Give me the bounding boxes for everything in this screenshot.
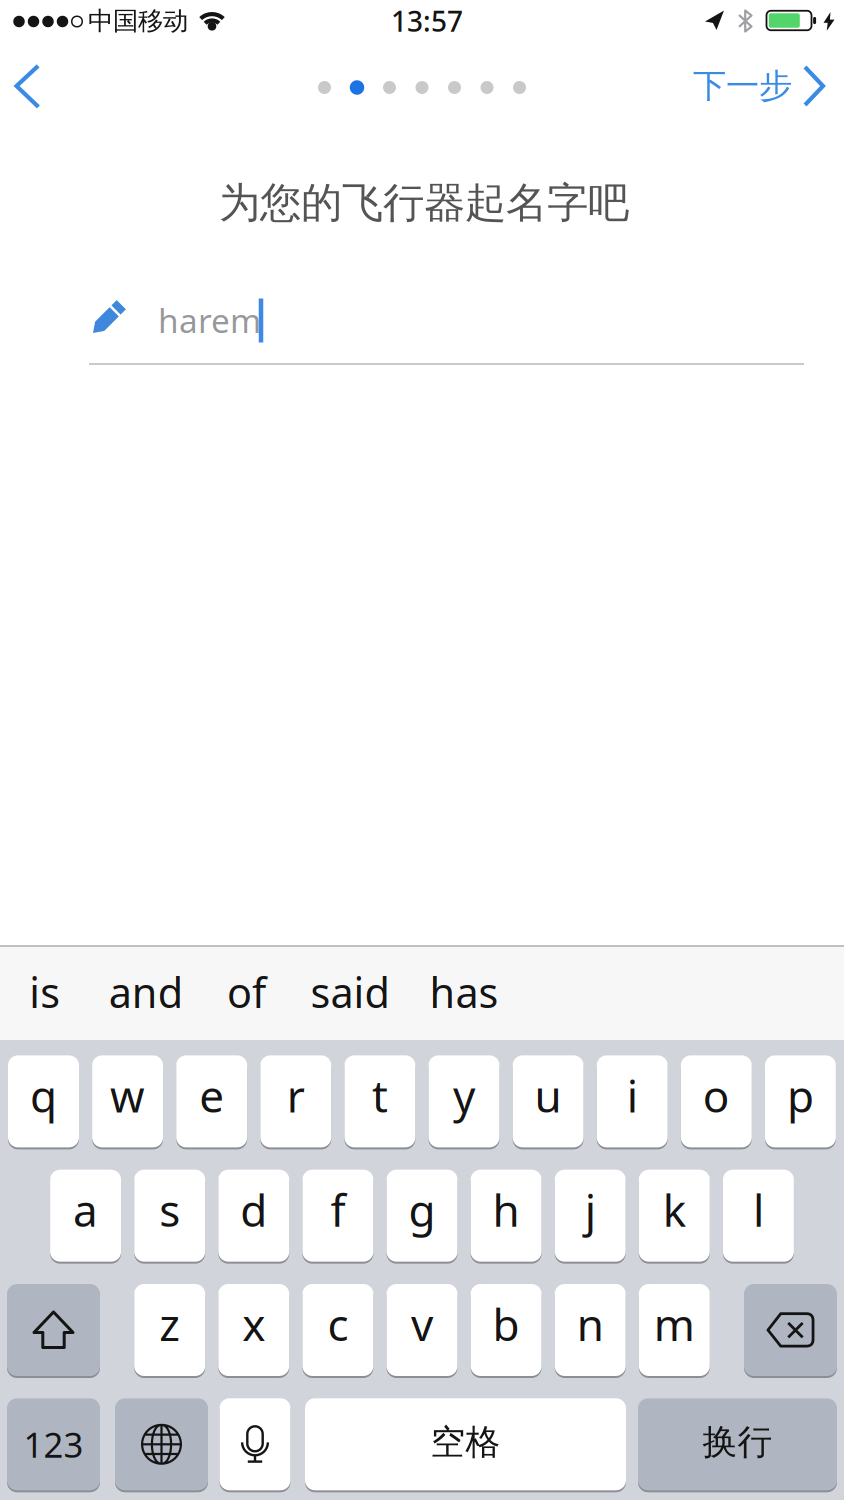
button[interactable]: j bbox=[555, 1170, 626, 1262]
button[interactable]: 换行 bbox=[638, 1398, 837, 1490]
staticText: 下一步 bbox=[693, 65, 792, 106]
button[interactable]: p bbox=[765, 1055, 836, 1147]
staticText: i bbox=[627, 1066, 638, 1125]
button[interactable]: has bbox=[429, 965, 498, 1019]
staticText: s bbox=[159, 1180, 180, 1239]
staticText: c bbox=[327, 1295, 348, 1353]
button[interactable]: of bbox=[227, 965, 266, 1019]
button[interactable]: r bbox=[260, 1055, 331, 1147]
staticText: b bbox=[493, 1295, 520, 1353]
button[interactable]: 下一步 bbox=[693, 65, 825, 106]
staticText: m bbox=[654, 1295, 695, 1353]
button[interactable]: l bbox=[723, 1170, 794, 1262]
button[interactable]: a bbox=[50, 1170, 121, 1262]
staticText: n bbox=[577, 1295, 604, 1353]
staticText: k bbox=[663, 1180, 686, 1239]
button[interactable]: s bbox=[134, 1170, 205, 1262]
button[interactable]: b bbox=[471, 1284, 542, 1376]
button[interactable]: said bbox=[310, 965, 389, 1019]
button[interactable]: h bbox=[471, 1170, 542, 1262]
button[interactable]: w bbox=[92, 1055, 163, 1147]
staticText: w bbox=[110, 1066, 145, 1125]
staticText: 为您的飞行器起名字吧 bbox=[219, 178, 629, 228]
button[interactable]: Delete bbox=[744, 1284, 837, 1376]
button[interactable]: c bbox=[302, 1284, 373, 1376]
button[interactable]: f bbox=[302, 1170, 373, 1262]
staticText: h bbox=[493, 1180, 520, 1239]
staticText: harem bbox=[158, 298, 261, 342]
staticText: is bbox=[29, 965, 60, 1019]
staticText: x bbox=[242, 1295, 265, 1353]
staticText: and bbox=[109, 965, 183, 1019]
staticText: 13:57 bbox=[391, 2, 463, 40]
staticText: j bbox=[585, 1180, 596, 1239]
button[interactable]: Back bbox=[15, 64, 40, 108]
button[interactable]: d bbox=[218, 1170, 289, 1262]
button[interactable]: x bbox=[218, 1284, 289, 1376]
staticText: g bbox=[408, 1180, 435, 1239]
staticText: r bbox=[287, 1066, 305, 1125]
button[interactable]: Shift bbox=[7, 1284, 100, 1376]
button[interactable]: k bbox=[639, 1170, 710, 1262]
button[interactable]: e bbox=[176, 1055, 247, 1147]
staticText: t bbox=[372, 1066, 388, 1125]
staticText: a bbox=[73, 1180, 98, 1239]
staticText: 空格 bbox=[430, 1421, 500, 1464]
staticText: said bbox=[310, 965, 389, 1019]
button[interactable]: Dictate bbox=[219, 1398, 290, 1490]
staticText: q bbox=[30, 1066, 57, 1125]
staticText: of bbox=[227, 965, 266, 1019]
button[interactable]: 空格 bbox=[305, 1398, 626, 1490]
button[interactable]: v bbox=[386, 1284, 457, 1376]
button[interactable]: q bbox=[8, 1055, 79, 1147]
button[interactable]: Numbers bbox=[7, 1398, 100, 1490]
button[interactable]: m bbox=[639, 1284, 710, 1376]
staticText: v bbox=[411, 1295, 433, 1353]
staticText: f bbox=[330, 1180, 345, 1239]
staticText: l bbox=[753, 1180, 764, 1239]
button[interactable]: n bbox=[555, 1284, 626, 1376]
button[interactable]: is bbox=[29, 965, 60, 1019]
staticText: e bbox=[199, 1066, 224, 1125]
button[interactable]: y bbox=[428, 1055, 499, 1147]
button[interactable]: Aircraft name bbox=[88, 291, 805, 365]
button[interactable]: u bbox=[513, 1055, 584, 1147]
staticText: d bbox=[240, 1180, 267, 1239]
button[interactable]: o bbox=[681, 1055, 752, 1147]
button[interactable]: z bbox=[134, 1284, 205, 1376]
staticText: o bbox=[703, 1066, 730, 1125]
staticText: y bbox=[453, 1066, 475, 1125]
button[interactable]: g bbox=[386, 1170, 457, 1262]
staticText: 换行 bbox=[702, 1421, 772, 1464]
staticText: p bbox=[787, 1066, 814, 1125]
staticText: 123 bbox=[23, 1421, 83, 1467]
button[interactable]: Next keyboard bbox=[115, 1398, 208, 1490]
staticText: has bbox=[429, 965, 498, 1019]
staticText: u bbox=[535, 1066, 562, 1125]
button[interactable]: i bbox=[597, 1055, 668, 1147]
button[interactable]: t bbox=[344, 1055, 415, 1147]
button[interactable]: and bbox=[109, 965, 183, 1019]
staticText: z bbox=[159, 1295, 180, 1353]
staticText: 中国移动 bbox=[88, 5, 188, 36]
